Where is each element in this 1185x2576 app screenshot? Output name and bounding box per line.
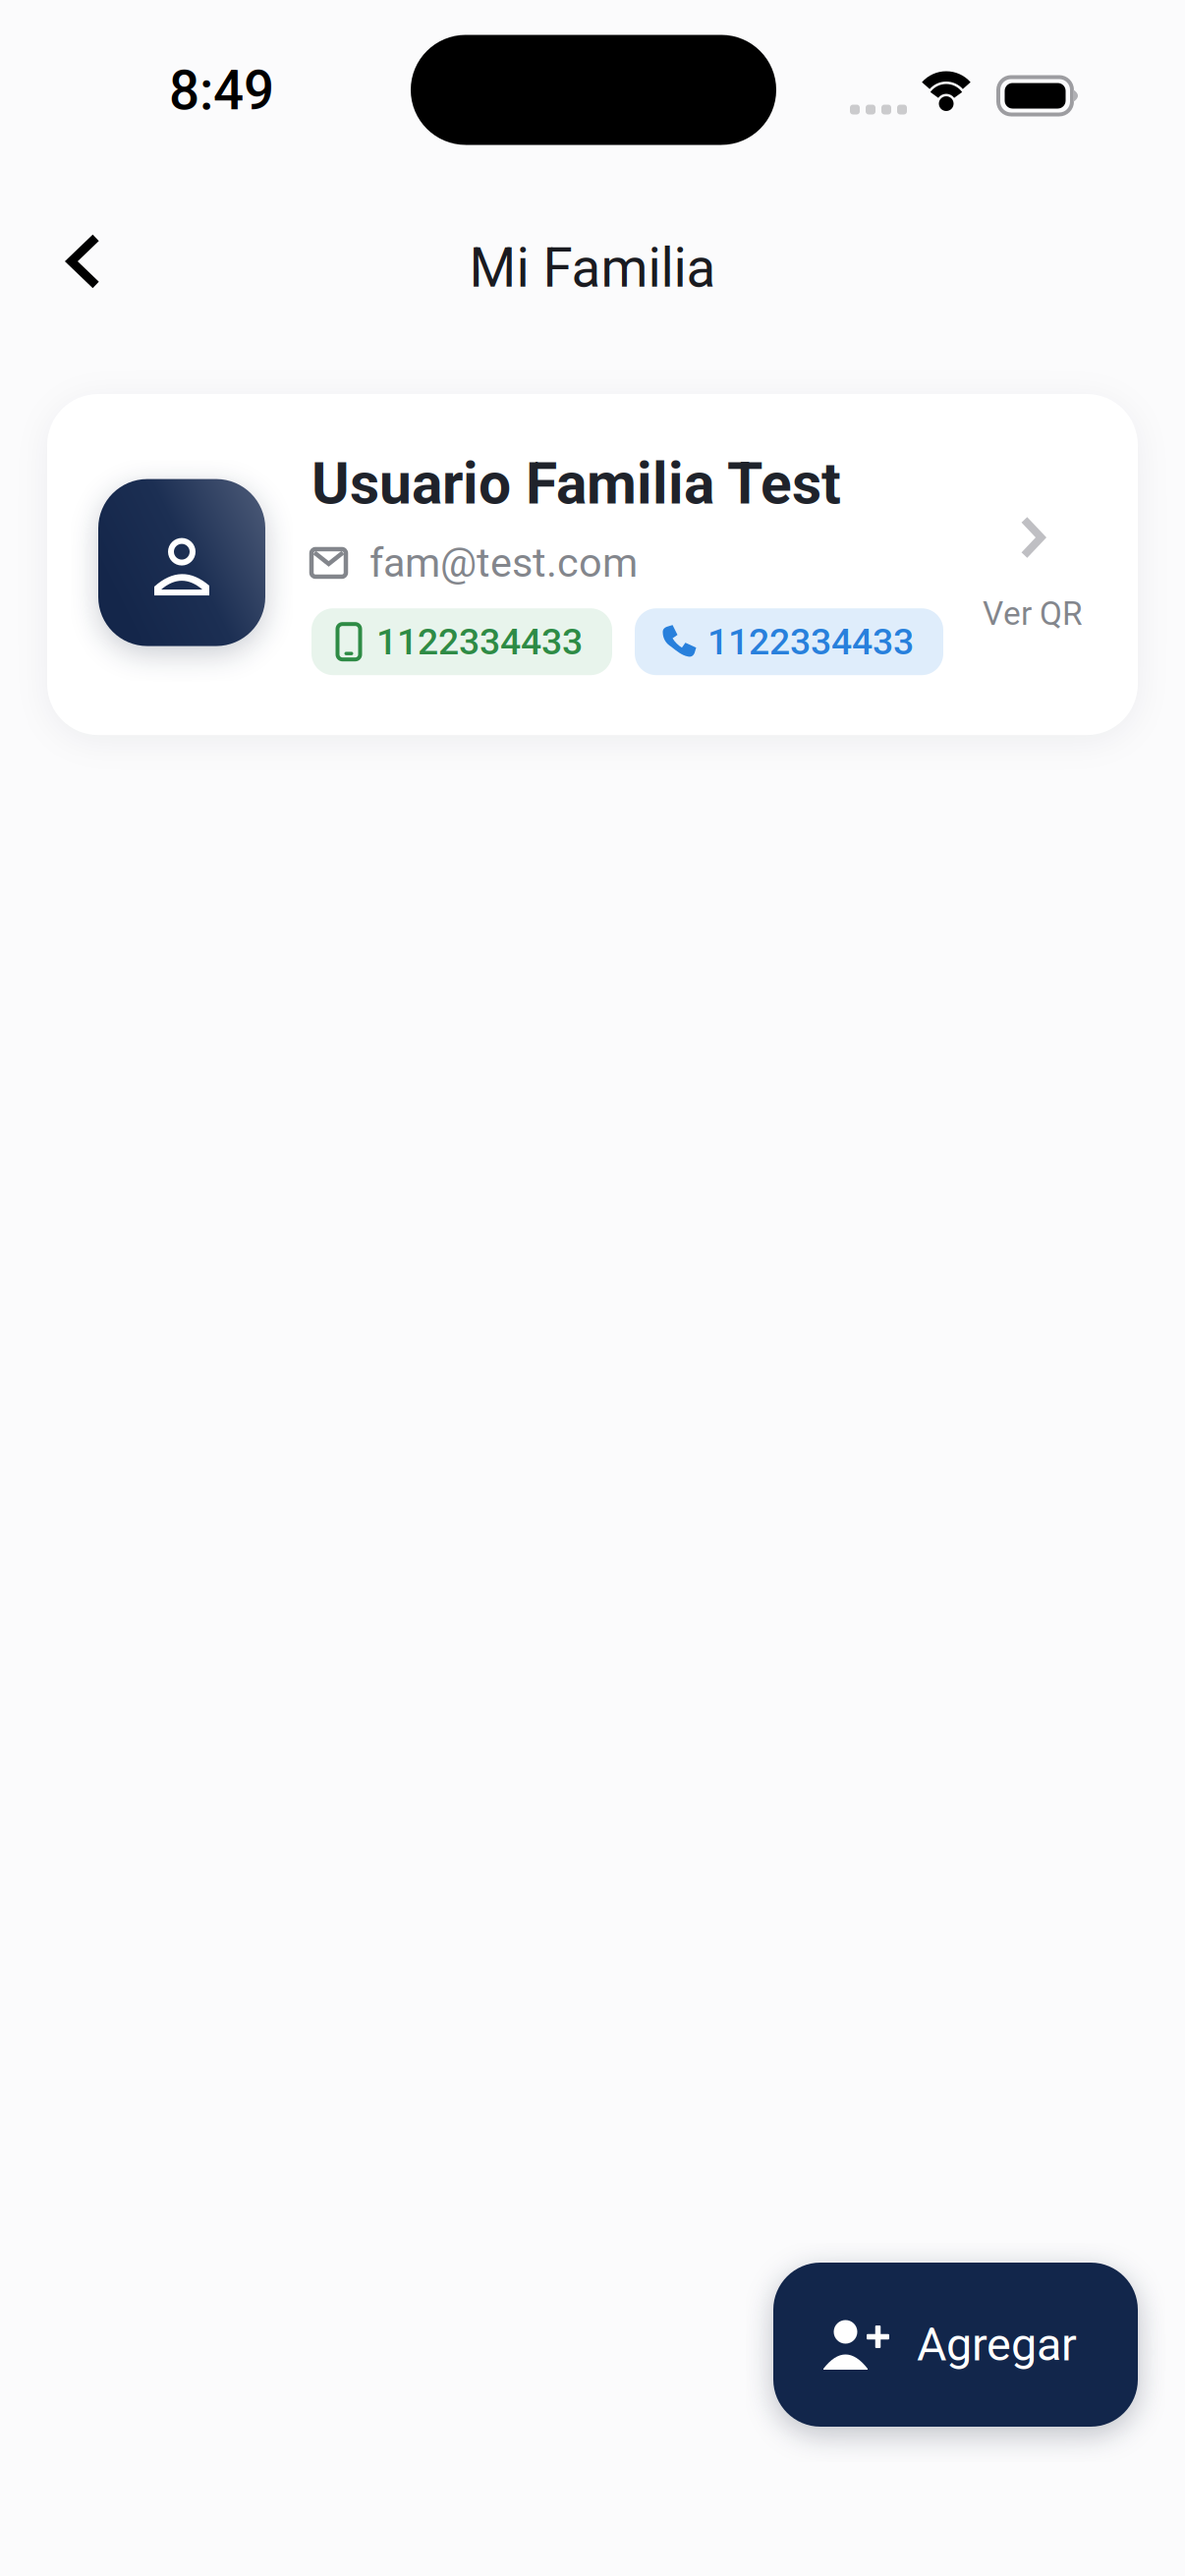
button[interactable]: Agregar [773,2263,1138,2427]
button[interactable]: Back [34,212,133,310]
button[interactable]: 1122334433 [635,608,943,675]
staticText: 1122334433 [376,620,583,663]
staticText: Mi Familia [469,237,716,300]
staticText: Ver QR [983,594,1083,633]
staticText: Agregar [917,2318,1077,2372]
staticText: 8:49 [169,59,274,122]
button[interactable]: Usuario Familia Test [47,394,1138,735]
staticText: Usuario Familia Test [311,450,841,518]
staticText: fam@test.com [369,539,638,587]
button[interactable]: 1122334433 [311,608,612,675]
staticText: 1122334433 [707,620,914,663]
